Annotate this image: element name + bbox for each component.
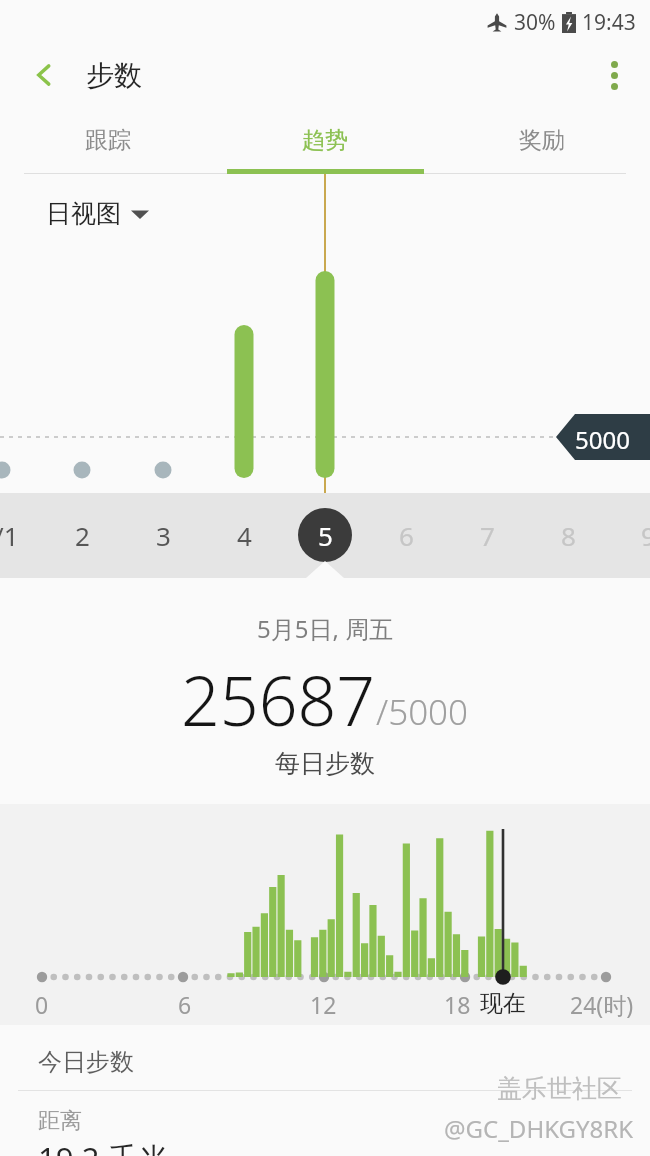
staticText: @GC_DHKGY8RK bbox=[444, 1112, 634, 1145]
staticText: 30% bbox=[514, 8, 556, 37]
staticText: 5000 bbox=[575, 423, 630, 456]
staticText: 7 bbox=[480, 518, 495, 553]
staticText: 每日步数 bbox=[275, 748, 375, 779]
staticText: 日视图 bbox=[46, 198, 121, 229]
button[interactable]: 趋势 bbox=[216, 106, 433, 174]
staticText: 6 bbox=[399, 518, 414, 553]
staticText: 3 bbox=[156, 518, 171, 553]
button[interactable]: 跟踪 bbox=[0, 106, 216, 174]
staticText: 4 bbox=[237, 518, 252, 553]
button[interactable]: 6 bbox=[378, 507, 434, 563]
button[interactable]: 7 bbox=[459, 507, 515, 563]
staticText: 5 bbox=[318, 518, 333, 553]
staticText: 奖励 bbox=[519, 126, 565, 155]
button[interactable]: 5 bbox=[297, 507, 353, 563]
staticText: 19.2 千米 bbox=[38, 1137, 170, 1156]
staticText: 今日步数 bbox=[38, 1047, 134, 1077]
button[interactable]: 8 bbox=[540, 507, 596, 563]
staticText: 19:43 bbox=[582, 8, 636, 37]
button[interactable]: Back bbox=[20, 51, 68, 99]
button[interactable]: 9 bbox=[620, 507, 650, 563]
button[interactable]: /1 bbox=[0, 507, 34, 563]
button[interactable]: 日视图 bbox=[46, 198, 149, 229]
staticText: 现在 bbox=[480, 989, 526, 1018]
staticText: 盖乐世社区 bbox=[497, 1073, 622, 1104]
staticText: 24(时) bbox=[570, 989, 634, 1020]
staticText: 9 bbox=[641, 518, 650, 553]
staticText: 跟踪 bbox=[85, 126, 131, 155]
staticText: 趋势 bbox=[302, 126, 348, 155]
staticText: 0 bbox=[35, 989, 49, 1020]
button[interactable]: More options bbox=[590, 51, 638, 99]
button[interactable]: 4 bbox=[216, 507, 272, 563]
staticText: 8 bbox=[561, 518, 576, 553]
staticText: 25687 bbox=[181, 653, 376, 746]
staticText: 18 bbox=[444, 989, 471, 1020]
staticText: 12 bbox=[310, 989, 337, 1020]
staticText: /1 bbox=[0, 518, 19, 553]
staticText: 6 bbox=[178, 989, 192, 1020]
button[interactable]: 奖励 bbox=[433, 106, 650, 174]
staticText: 距离 bbox=[38, 1107, 82, 1135]
button[interactable]: 2 bbox=[54, 507, 110, 563]
staticText: 5月5日, 周五 bbox=[257, 612, 394, 645]
staticText: 步数 bbox=[86, 58, 142, 93]
button[interactable]: 3 bbox=[135, 507, 191, 563]
staticText: 2 bbox=[75, 518, 90, 553]
staticText: /5000 bbox=[376, 688, 469, 736]
